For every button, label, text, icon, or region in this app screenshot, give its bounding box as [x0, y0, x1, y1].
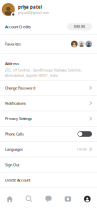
button[interactable]: Search: [19, 188, 39, 210]
button[interactable]: Messages: [39, 188, 58, 210]
button[interactable]: Address: [0, 53, 97, 80]
staticText: Favorites: [5, 41, 21, 46]
staticText: Notifications: [5, 101, 26, 106]
button[interactable]: Favorites: [0, 35, 97, 53]
staticText: Languages: [5, 147, 23, 152]
staticText: Address: [5, 61, 19, 66]
button[interactable]: Wallet: [58, 188, 78, 210]
staticText: Privacy Settings: [5, 116, 32, 121]
staticText: priya patel: [18, 4, 42, 10]
button[interactable]: Languages: [0, 142, 97, 157]
button[interactable]: Home: [0, 188, 19, 210]
staticText: French: [77, 147, 87, 151]
button[interactable]: Delete Account: [0, 173, 97, 188]
button[interactable]: Account Credits: [0, 19, 97, 35]
button[interactable]: Notifications: [0, 96, 97, 111]
staticText: priya44@gmail.com: [18, 11, 49, 15]
staticText: Change Password: [5, 85, 35, 90]
button[interactable]: Privacy Settings: [0, 111, 97, 127]
staticText: Ahmedabad, Gujarat 38001, India: [5, 73, 58, 78]
button[interactable]: Profile: [78, 188, 97, 210]
staticText: 202, elf Sankraj - Gandhinagar Highway, …: [5, 68, 82, 72]
staticText: Delete Account: [5, 177, 30, 183]
button[interactable]: Sign Out: [0, 157, 97, 173]
staticText: $90.90: [74, 25, 85, 29]
staticText: Account Credits: [5, 24, 31, 29]
button[interactable]: Change Password: [0, 80, 97, 96]
button[interactable]: Phone Calls: [0, 127, 97, 142]
staticText: Sign Out: [5, 162, 19, 167]
staticText: Phone Calls: [5, 131, 24, 136]
